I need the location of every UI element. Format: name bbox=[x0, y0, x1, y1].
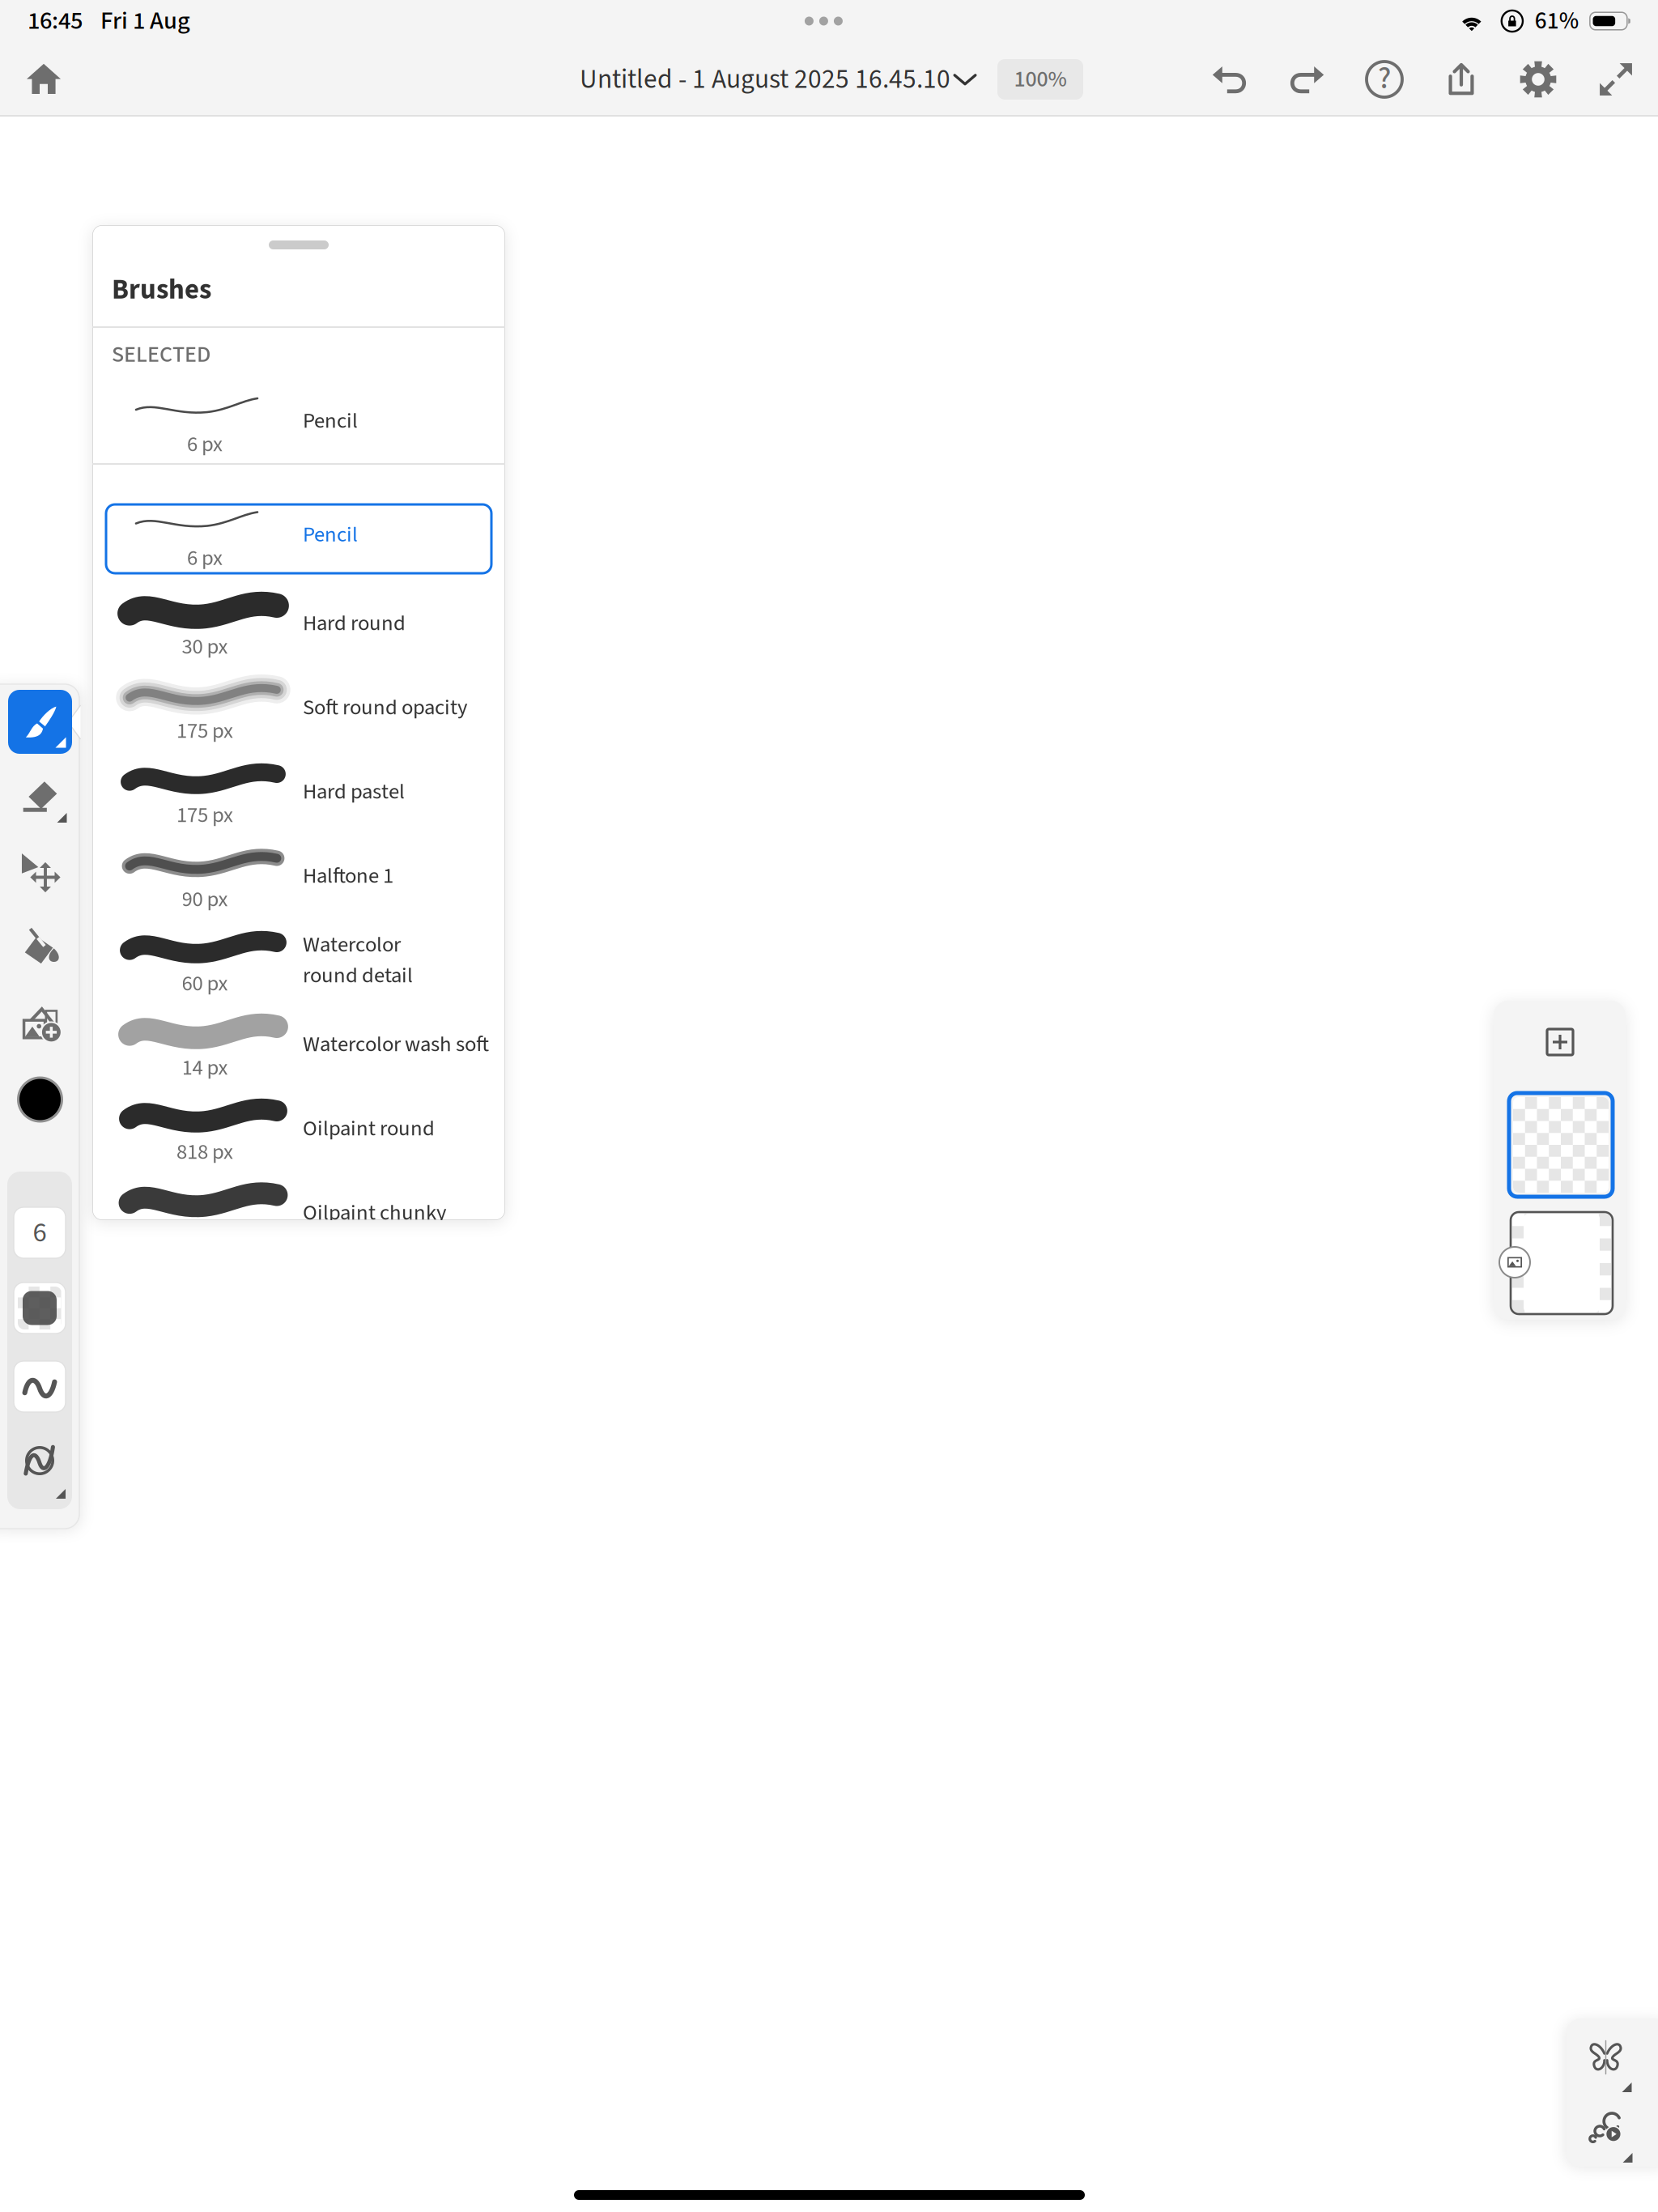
button[interactable]: Layer 1, image bbox=[1510, 1211, 1613, 1315]
button[interactable]: 60 px bbox=[106, 918, 491, 1002]
button[interactable] bbox=[106, 1171, 491, 1220]
button[interactable]: Blend mode bbox=[14, 1441, 66, 1501]
button[interactable]: Transform tool bbox=[8, 843, 72, 901]
button[interactable]: 14 px bbox=[106, 1002, 491, 1087]
staticText: 6 bbox=[33, 1213, 47, 1253]
button[interactable]: 90 px bbox=[106, 834, 491, 918]
button[interactable]: 818 px bbox=[106, 1087, 491, 1171]
button[interactable]: 6 px bbox=[106, 379, 491, 463]
button[interactable]: Place image bbox=[8, 992, 72, 1050]
button[interactable]: Add layer bbox=[1547, 1029, 1573, 1055]
button[interactable]: 6 px bbox=[106, 504, 491, 573]
button[interactable]: 175 px bbox=[106, 666, 491, 750]
staticText: Oilpaint chunky bbox=[303, 1197, 446, 1228]
staticText: 100% bbox=[1014, 63, 1067, 96]
button[interactable]: Eraser tool bbox=[8, 768, 72, 826]
button[interactable]: Home bbox=[8, 42, 79, 117]
button[interactable]: 175 px bbox=[106, 750, 491, 834]
button[interactable]: Colour bbox=[8, 1070, 72, 1129]
staticText: 61% bbox=[1535, 4, 1579, 38]
button[interactable]: Redo bbox=[1268, 42, 1346, 117]
button[interactable]: Untitled - 1 August 2025 16.45.10 bbox=[580, 42, 984, 117]
button[interactable]: Fill tool bbox=[8, 917, 72, 975]
button[interactable]: Undo bbox=[1191, 42, 1269, 117]
button[interactable]: Settings bbox=[1499, 42, 1577, 117]
button[interactable]: Brush size bbox=[14, 1207, 66, 1258]
staticText: 60 px bbox=[182, 968, 228, 999]
button[interactable]: Share bbox=[1422, 42, 1500, 117]
staticText: SELECTED bbox=[112, 339, 210, 371]
staticText: Pencil bbox=[303, 519, 358, 550]
button[interactable]: Brush tool bbox=[8, 690, 72, 754]
staticText: 175 px bbox=[176, 716, 233, 747]
button[interactable]: Time-lapse bbox=[1589, 2110, 1624, 2146]
staticText: Pencil bbox=[303, 406, 358, 436]
staticText: Hard round bbox=[303, 608, 406, 639]
staticText: ? bbox=[1378, 57, 1391, 100]
staticText: Watercolor round detail bbox=[303, 929, 413, 991]
staticText: 14 px bbox=[182, 1053, 228, 1083]
staticText: 16:45 bbox=[28, 3, 83, 39]
button[interactable]: Help bbox=[1346, 42, 1423, 117]
staticText: Untitled - 1 August 2025 16.45.10 bbox=[580, 60, 950, 99]
button[interactable]: Symmetry bbox=[1588, 2040, 1624, 2075]
button[interactable]: Smoothing bbox=[14, 1361, 66, 1412]
staticText: 30 px bbox=[182, 632, 228, 662]
staticText: 818 px bbox=[176, 1137, 233, 1168]
staticText: Brushes bbox=[112, 270, 211, 310]
staticText: Halftone 1 bbox=[303, 861, 393, 891]
staticText: Fri 1 Aug bbox=[100, 3, 190, 39]
button[interactable]: Full screen bbox=[1577, 42, 1655, 117]
button[interactable]: Layer 2, selected bbox=[1509, 1093, 1613, 1197]
staticText: Soft round opacity bbox=[303, 692, 467, 723]
staticText: Hard pastel bbox=[303, 776, 405, 807]
staticText: 6 px bbox=[187, 543, 223, 574]
staticText: Watercolor wash soft bbox=[303, 1029, 489, 1060]
staticText: 6 px bbox=[187, 429, 223, 460]
staticText: Oilpaint round bbox=[303, 1113, 435, 1144]
button[interactable]: Opacity bbox=[14, 1283, 66, 1334]
button[interactable]: 30 px bbox=[106, 581, 491, 666]
staticText: 175 px bbox=[176, 800, 233, 831]
staticText: 90 px bbox=[182, 884, 228, 915]
